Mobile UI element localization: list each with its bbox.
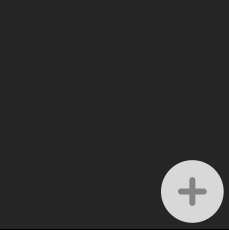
- button[interactable]: Add: [161, 160, 224, 223]
